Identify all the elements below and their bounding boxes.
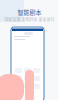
staticText: 智能剧本 xyxy=(17,8,41,16)
staticText: 轻松设置 文明开车 安全出行 xyxy=(4,17,54,22)
